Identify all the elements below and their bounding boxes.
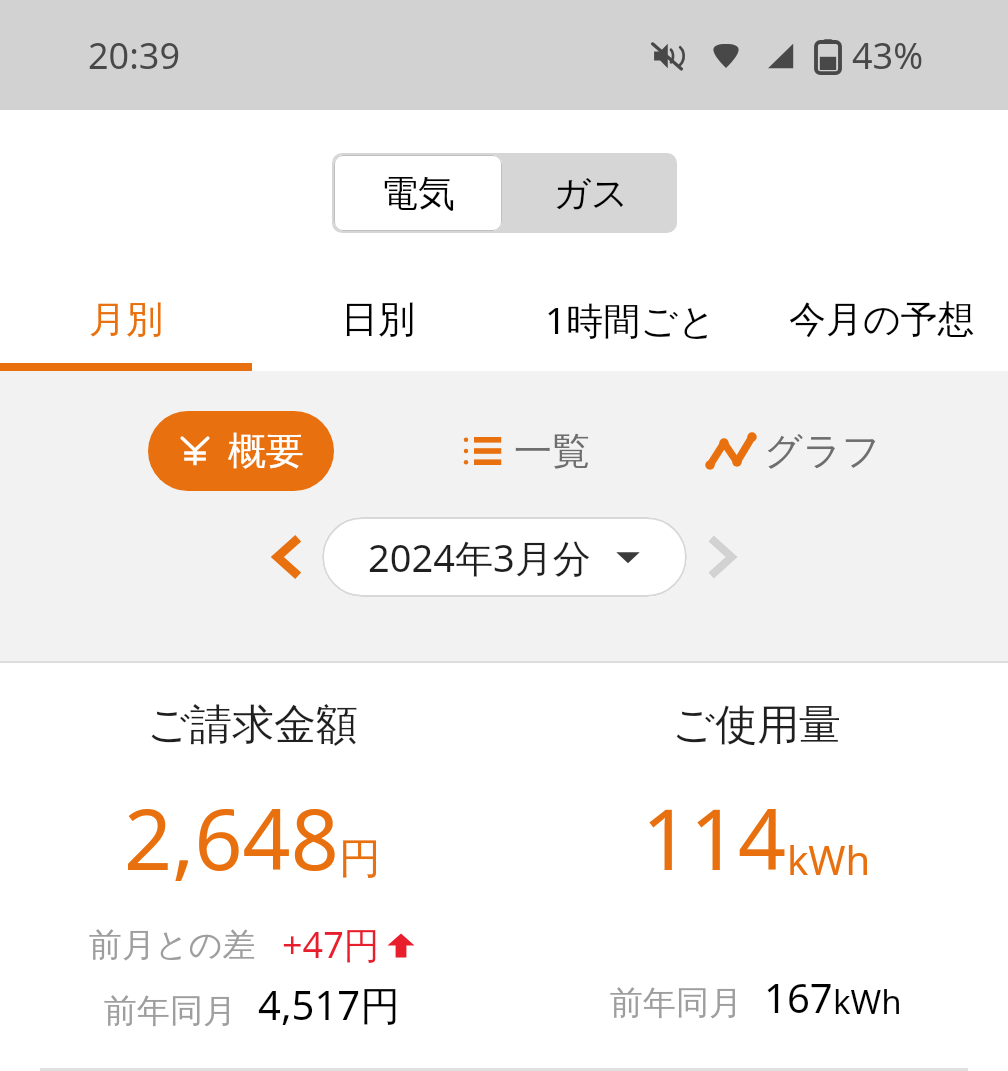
staticText: 一覧: [514, 427, 590, 475]
button[interactable]: 日別: [252, 275, 504, 363]
staticText: 今月の予想: [789, 296, 975, 343]
button[interactable]: 今月の予想: [756, 275, 1008, 363]
staticText: 4,517円: [258, 977, 401, 1032]
staticText: 2,648: [124, 780, 339, 894]
staticText: 前年同月: [610, 982, 742, 1024]
staticText: 114: [642, 780, 787, 894]
button[interactable]: Previous month: [252, 522, 322, 592]
staticText: 20:39: [88, 31, 181, 80]
staticText: 電気: [381, 170, 455, 217]
button[interactable]: 月別: [0, 275, 252, 363]
staticText: 前年同月: [104, 990, 236, 1032]
button[interactable]: ガス: [504, 153, 677, 233]
staticText: 円: [339, 833, 381, 886]
staticText: 前月との差: [89, 924, 256, 966]
staticText: グラフ: [764, 427, 881, 475]
button[interactable]: 2024年3月分: [322, 517, 687, 597]
staticText: 日別: [341, 296, 415, 343]
button[interactable]: グラフ: [698, 418, 889, 484]
staticText: 月別: [89, 296, 163, 343]
staticText: ご請求金額: [147, 699, 358, 752]
staticText: 2024年3月分: [368, 531, 591, 583]
staticText: 43%: [852, 31, 924, 80]
button[interactable]: 一覧: [454, 419, 598, 483]
staticText: ガス: [553, 170, 629, 217]
staticText: 167: [764, 970, 833, 1024]
button[interactable]: 1時間ごと: [504, 275, 756, 363]
staticText: kWh: [787, 832, 871, 886]
staticText: kWh: [833, 979, 902, 1024]
button[interactable]: 概要: [148, 411, 334, 491]
staticText: 概要: [228, 427, 304, 475]
button[interactable]: Next month: [687, 522, 757, 592]
staticText: ご使用量: [672, 699, 841, 752]
button[interactable]: 電気: [334, 155, 502, 231]
staticText: 1時間ごと: [545, 294, 716, 345]
staticText: +47円: [282, 920, 380, 969]
